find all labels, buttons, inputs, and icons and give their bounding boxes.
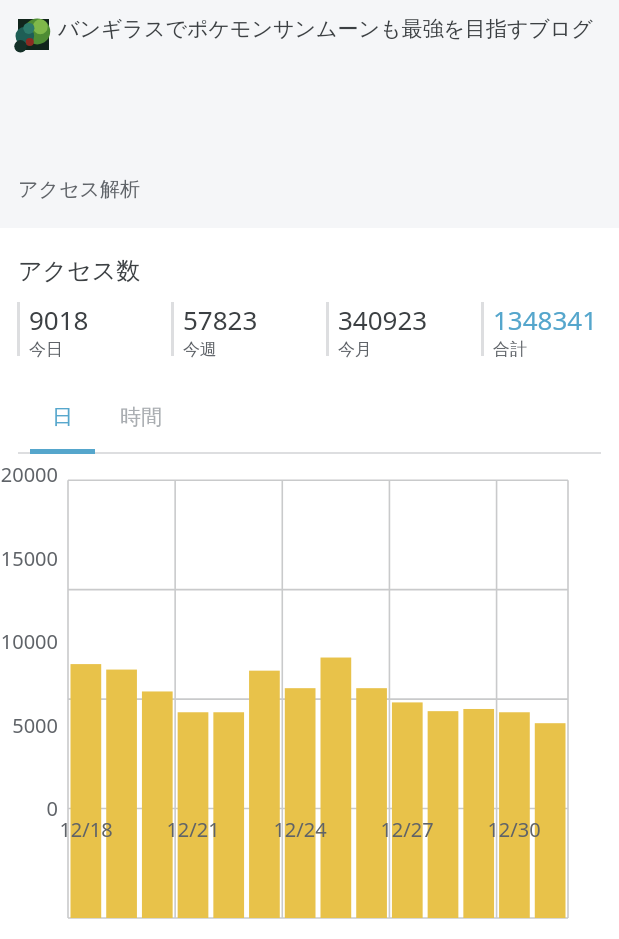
staticText: 日 bbox=[52, 404, 73, 430]
button[interactable]: 57823 bbox=[154, 302, 309, 364]
button[interactable]: 1348341 bbox=[464, 302, 619, 364]
staticText: 12/24 bbox=[259, 816, 341, 843]
staticText: 5000 bbox=[0, 712, 58, 739]
staticText: アクセス解析 bbox=[18, 177, 140, 202]
staticText: 12/27 bbox=[366, 816, 448, 843]
staticText: 15000 bbox=[0, 545, 58, 572]
button[interactable]: 9018 bbox=[0, 302, 154, 364]
staticText: 今週 bbox=[183, 339, 217, 360]
other: Blog icon bbox=[18, 19, 49, 50]
staticText: アクセス数 bbox=[18, 256, 141, 286]
staticText: バンギラスでポケモンサンムーンも最強を目指すブログ bbox=[58, 16, 593, 42]
staticText: 12/18 bbox=[45, 816, 127, 843]
staticText: 合計 bbox=[493, 339, 527, 360]
staticText: 今日 bbox=[29, 339, 63, 360]
button[interactable]: 時間 bbox=[103, 396, 178, 454]
button[interactable]: 日 bbox=[30, 396, 95, 454]
staticText: 340923 bbox=[338, 302, 428, 337]
staticText: 10000 bbox=[0, 628, 58, 655]
staticText: 時間 bbox=[120, 404, 162, 430]
staticText: 57823 bbox=[183, 302, 258, 337]
staticText: 9018 bbox=[29, 302, 89, 337]
staticText: 1348341 bbox=[493, 302, 598, 337]
staticText: 12/30 bbox=[473, 816, 555, 843]
staticText: 20000 bbox=[0, 461, 58, 488]
staticText: 12/21 bbox=[152, 816, 234, 843]
staticText: 今月 bbox=[338, 339, 372, 360]
staticText: 0 bbox=[0, 795, 58, 822]
button[interactable]: 340923 bbox=[309, 302, 464, 364]
button[interactable]: Blog icon bbox=[18, 16, 601, 47]
